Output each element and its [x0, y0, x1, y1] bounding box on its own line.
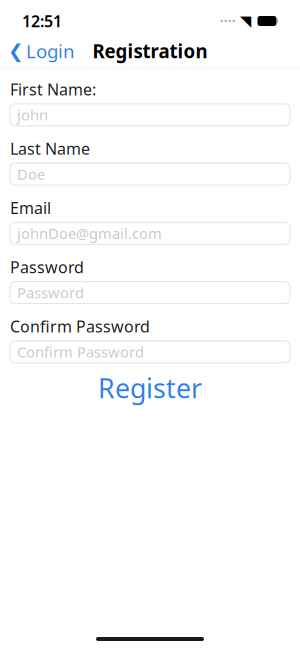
- staticText: john: [17, 105, 48, 125]
- staticText: Confirm Password: [17, 342, 144, 362]
- staticText: Password: [17, 283, 84, 302]
- staticText: Doe: [17, 164, 45, 184]
- staticText: johnDoe@gmail.com: [17, 224, 162, 243]
- staticText: Register: [98, 370, 202, 405]
- staticText: Last Name: [10, 138, 90, 159]
- staticText: Registration: [92, 39, 207, 63]
- staticText: Password: [10, 256, 84, 277]
- staticText: 12:51: [22, 10, 62, 32]
- staticText: Confirm Password: [10, 316, 150, 337]
- button[interactable]: ❮: [0, 36, 83, 66]
- staticText: Email: [10, 197, 51, 218]
- staticText: ◥: [240, 13, 251, 29]
- staticText: First Name:: [10, 79, 96, 100]
- staticText: Login: [26, 39, 75, 63]
- staticText: ❮: [8, 40, 24, 62]
- button[interactable]: Register: [10, 373, 290, 403]
